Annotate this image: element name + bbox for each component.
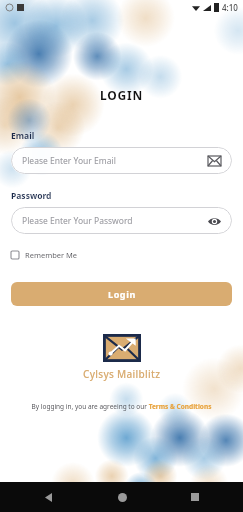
staticText: Remember Me: [25, 250, 78, 260]
button[interactable]: By logging in, you are agreeing to our T…: [0, 402, 243, 411]
staticText: Please Enter Your Password: [22, 215, 207, 227]
other: Email: [208, 156, 221, 166]
button[interactable]: Login: [11, 282, 232, 306]
other: Cylsys Mailblitz logo: [103, 334, 141, 362]
staticText: 4:10: [222, 2, 238, 13]
button[interactable]: Remember Me: [11, 250, 78, 260]
staticText: Login: [108, 288, 136, 300]
button[interactable]: Back: [38, 487, 58, 507]
staticText: Cylsys Mailblitz: [83, 367, 161, 381]
button[interactable]: Please Enter Your Password: [11, 207, 232, 234]
staticText: LOGIN: [0, 87, 243, 103]
button[interactable]: Recent apps: [185, 487, 205, 507]
staticText: Email: [11, 130, 35, 142]
button[interactable]: Home: [112, 487, 132, 507]
staticText: Please Enter Your Email: [22, 155, 208, 167]
button[interactable]: Please Enter Your Email: [11, 147, 232, 174]
staticText: Password: [11, 190, 52, 202]
button[interactable]: Show password: [207, 214, 221, 228]
